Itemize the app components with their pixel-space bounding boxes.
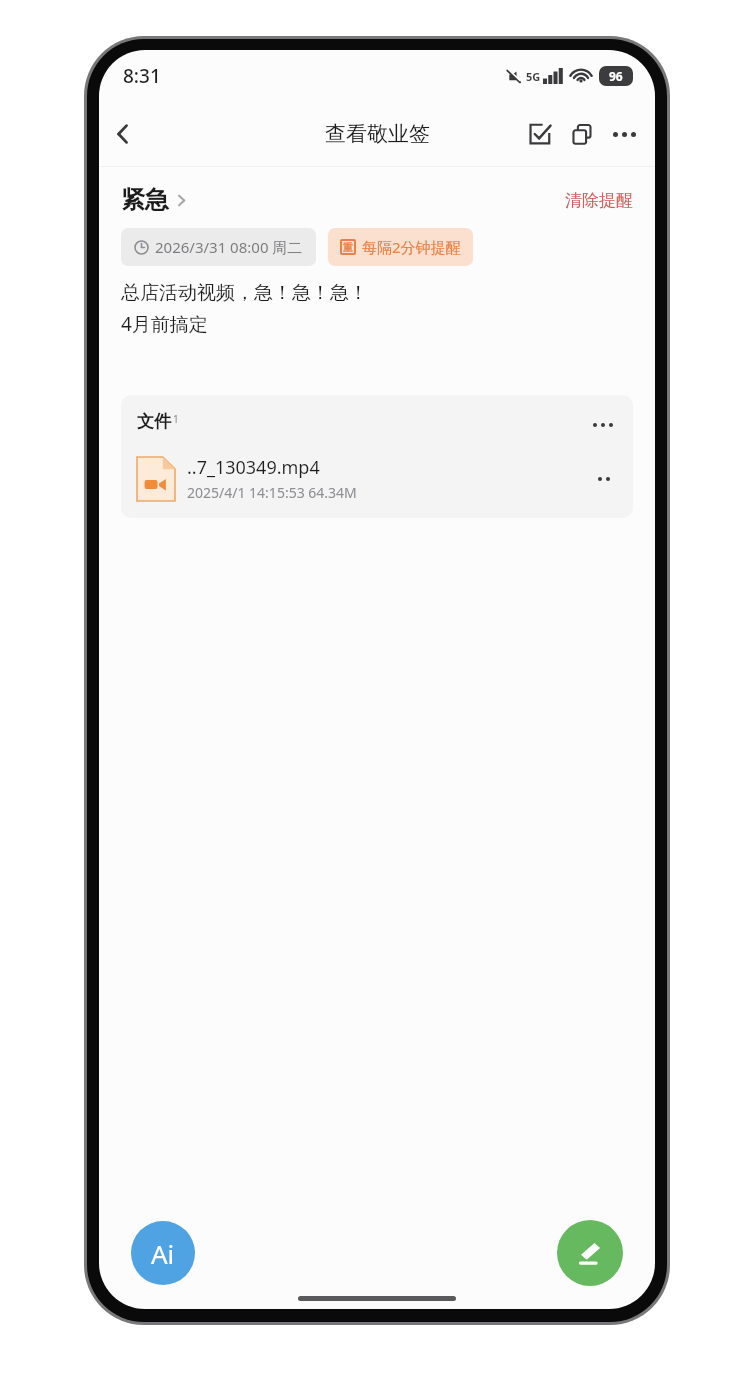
staticText: 紧急 — [121, 185, 169, 215]
staticText: 5G — [526, 69, 541, 84]
staticText: 4月前搞定 — [121, 311, 208, 337]
button[interactable]: More options — [603, 113, 645, 155]
button[interactable]: Edit — [557, 1220, 623, 1286]
button[interactable]: 重 — [328, 228, 473, 266]
staticText: 清除提醒 — [565, 190, 633, 211]
button[interactable]: 2026/3/31 08:00 周二 — [121, 228, 316, 266]
staticText: 重 — [343, 241, 353, 254]
staticText: 2025/4/1 14:15:53 64.34M — [187, 483, 357, 502]
button[interactable]: 紧急 — [121, 185, 189, 215]
staticText: 96 — [609, 68, 623, 84]
staticText: 2026/3/31 08:00 周二 — [155, 237, 303, 257]
staticText: ..7_130349.mp4 — [187, 455, 320, 480]
button[interactable]: 文件 — [121, 395, 633, 518]
staticText: 每隔2分钟提醒 — [362, 237, 461, 257]
staticText: Ai — [151, 1236, 175, 1271]
staticText: 1 — [173, 412, 179, 426]
button[interactable]: Checklist — [519, 113, 561, 155]
button[interactable]: ..7_130349.mp4 — [137, 455, 617, 502]
button[interactable]: Ai — [131, 1221, 195, 1285]
button[interactable]: Back — [99, 110, 147, 158]
staticText: 查看敬业签 — [325, 121, 430, 147]
staticText: 总店活动视频，急！急！急！ — [121, 281, 368, 305]
button[interactable]: File options — [589, 411, 617, 439]
button[interactable]: Item options — [591, 466, 617, 492]
staticText: 8:31 — [123, 63, 161, 89]
staticText: 文件 — [137, 411, 171, 432]
button[interactable]: Copy — [561, 113, 603, 155]
button[interactable]: 清除提醒 — [565, 190, 633, 211]
